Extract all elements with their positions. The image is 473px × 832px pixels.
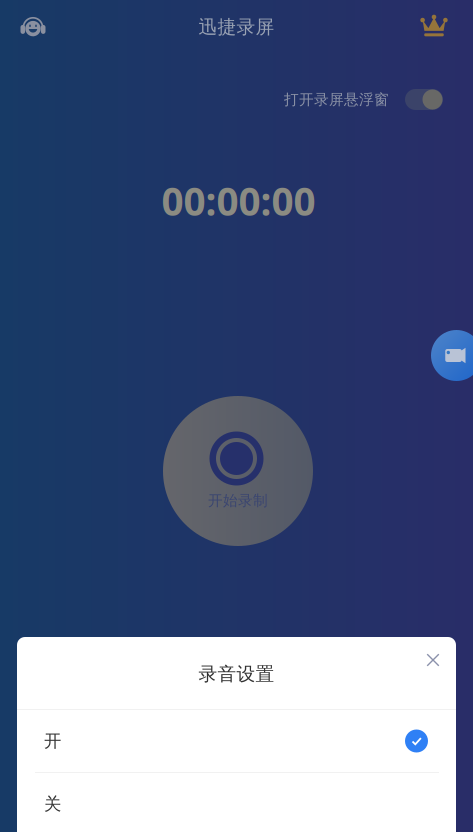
staticText: 00:00:00 xyxy=(161,175,315,226)
button[interactable]: 关闭 xyxy=(414,642,452,678)
staticText: 开始录制 xyxy=(208,491,268,509)
staticText: 迅捷录屏 xyxy=(198,15,274,38)
staticText: 打开录屏悬浮窗 xyxy=(284,90,389,108)
button[interactable]: 客服 xyxy=(10,5,56,49)
button[interactable]: 会员中心 xyxy=(411,4,457,48)
staticText: 录音设置 xyxy=(198,662,274,685)
button[interactable]: 开 xyxy=(17,710,456,772)
staticText: 关 xyxy=(44,793,61,815)
button[interactable]: 录屏悬浮窗开关 xyxy=(405,89,443,110)
button[interactable]: 开始录制 xyxy=(163,396,313,546)
button[interactable]: 关 xyxy=(17,773,456,832)
button[interactable]: 开始录制悬浮按钮 xyxy=(431,330,473,381)
staticText: 开 xyxy=(44,730,61,752)
